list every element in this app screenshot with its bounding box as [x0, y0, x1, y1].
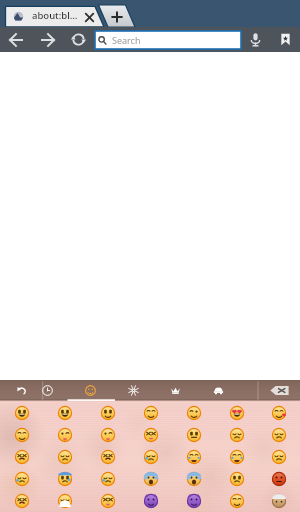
- button[interactable]: Smileys: [82, 380, 99, 401]
- button[interactable]: Close tab: [85, 13, 94, 22]
- button[interactable]: [5, 5, 83, 27]
- button[interactable]: Emoji: [172, 402, 215, 424]
- button[interactable]: Emoji: [258, 402, 300, 424]
- button[interactable]: Emoji: [172, 446, 215, 468]
- button[interactable]: Emoji: [258, 446, 300, 468]
- button[interactable]: Emoji: [43, 446, 86, 468]
- button[interactable]: New tab: [110, 10, 124, 24]
- button[interactable]: Emoji: [86, 402, 129, 424]
- button[interactable]: Back: [4, 27, 28, 52]
- button[interactable]: Emoji: [215, 468, 258, 490]
- button[interactable]: Emoji: [86, 446, 129, 468]
- button[interactable]: Emoji: [215, 424, 258, 446]
- button[interactable]: Emoji: [0, 490, 43, 512]
- button[interactable]: Emoji: [258, 468, 300, 490]
- button[interactable]: Emoji: [172, 490, 215, 512]
- button[interactable]: Emoji: [258, 490, 300, 512]
- button[interactable]: Emoji: [0, 402, 43, 424]
- button[interactable]: Travel: [210, 380, 227, 401]
- button[interactable]: Voice search: [243, 27, 268, 52]
- button[interactable]: Emoji: [0, 468, 43, 490]
- button[interactable]: Forward: [36, 27, 60, 52]
- button[interactable]: Emoji: [0, 446, 43, 468]
- button[interactable]: Emoji: [215, 402, 258, 424]
- button[interactable]: Emoji: [129, 490, 172, 512]
- button[interactable]: Emoji: [215, 490, 258, 512]
- button[interactable]: Emoji: [0, 424, 43, 446]
- button[interactable]: Emoji: [43, 424, 86, 446]
- button[interactable]: Emoji: [86, 490, 129, 512]
- button[interactable]: Reload: [67, 27, 90, 52]
- button[interactable]: [95, 31, 241, 49]
- button[interactable]: Emoji: [129, 402, 172, 424]
- button[interactable]: Emoji: [86, 424, 129, 446]
- staticText: about:bl…: [32, 9, 78, 22]
- button[interactable]: Nature: [125, 380, 142, 401]
- button[interactable]: Back: [13, 380, 30, 401]
- button[interactable]: Emoji: [86, 468, 129, 490]
- button[interactable]: Emoji: [172, 468, 215, 490]
- button[interactable]: Emoji: [129, 446, 172, 468]
- staticText: Search: [112, 34, 141, 46]
- button[interactable]: Emoji: [129, 424, 172, 446]
- button[interactable]: Emoji: [129, 468, 172, 490]
- button[interactable]: Emoji: [172, 424, 215, 446]
- button[interactable]: Backspace: [262, 380, 297, 401]
- button[interactable]: Emoji: [43, 402, 86, 424]
- button[interactable]: Bookmarks: [274, 27, 297, 52]
- button[interactable]: Emoji: [43, 468, 86, 490]
- button[interactable]: Objects: [167, 380, 184, 401]
- button[interactable]: Emoji: [215, 446, 258, 468]
- button[interactable]: Emoji: [258, 424, 300, 446]
- button[interactable]: Emoji: [43, 490, 86, 512]
- button[interactable]: Recent: [39, 380, 56, 401]
